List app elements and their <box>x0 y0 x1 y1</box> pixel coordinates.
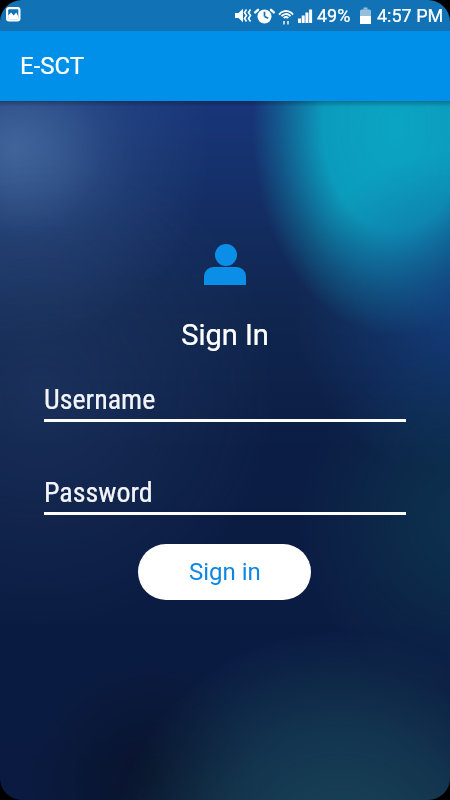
button[interactable]: Sign in <box>138 544 311 600</box>
button[interactable]: Password <box>44 469 406 515</box>
staticText: Sign in <box>189 558 261 586</box>
staticText: 4:57 PM <box>377 5 444 26</box>
staticText: Username <box>44 383 156 416</box>
staticText: 49% <box>317 5 351 26</box>
staticText: Password <box>44 476 153 509</box>
button[interactable]: Username <box>44 376 406 422</box>
staticText: Sign In <box>0 318 450 352</box>
staticText: E-SCT <box>20 52 85 80</box>
